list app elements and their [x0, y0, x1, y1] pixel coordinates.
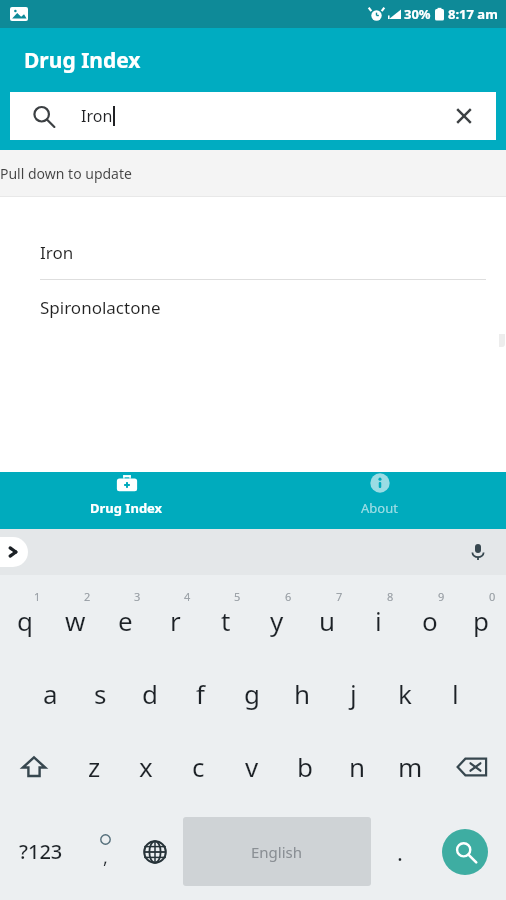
button[interactable]: k — [379, 657, 430, 730]
staticText: 30% — [404, 5, 431, 23]
staticText: Drug Index — [90, 499, 163, 517]
staticText: m — [398, 749, 423, 784]
staticText: ?123 — [19, 838, 63, 865]
button[interactable]: z — [68, 730, 120, 803]
button[interactable]: Clear search — [454, 106, 474, 126]
staticText: a — [43, 676, 58, 711]
staticText: g — [244, 676, 260, 711]
staticText: 8:17 am — [448, 5, 498, 23]
button[interactable]: s — [75, 657, 125, 730]
button[interactable]: 8 — [353, 575, 404, 657]
button[interactable]: Emoji and comma — [81, 803, 130, 900]
staticText: Iron — [81, 105, 113, 127]
staticText: 3 — [134, 589, 141, 604]
staticText: Iron — [40, 241, 74, 264]
staticText: 6 — [285, 589, 292, 604]
button[interactable]: Pull down to update — [0, 150, 506, 196]
button[interactable]: . — [375, 803, 424, 900]
other: Search — [32, 105, 54, 127]
button[interactable]: Shift — [0, 730, 68, 803]
button[interactable]: 5 — [200, 575, 251, 657]
staticText: p — [473, 603, 489, 638]
staticText: 0 — [489, 589, 496, 604]
staticText: v — [245, 749, 259, 784]
button[interactable]: ?123 — [0, 803, 81, 900]
button[interactable]: v — [225, 730, 278, 803]
staticText: e — [118, 603, 133, 638]
button[interactable]: 4 — [150, 575, 200, 657]
button[interactable]: 1 — [0, 575, 50, 657]
staticText: z — [88, 749, 101, 784]
button[interactable]: 0 — [455, 575, 506, 657]
button[interactable]: f — [175, 657, 226, 730]
staticText: s — [94, 676, 107, 711]
button[interactable]: c — [172, 730, 225, 803]
button[interactable]: n — [331, 730, 384, 803]
staticText: i — [375, 603, 382, 638]
staticText: y — [270, 603, 284, 638]
staticText: Spironolactone — [40, 296, 161, 319]
button[interactable]: About — [253, 472, 506, 517]
staticText: . — [397, 837, 403, 867]
button[interactable]: Search — [424, 803, 506, 900]
button[interactable]: 7 — [302, 575, 353, 657]
staticText: o — [422, 603, 438, 638]
staticText: f — [196, 676, 205, 711]
button[interactable]: l — [430, 657, 481, 730]
button[interactable]: English — [183, 817, 371, 886]
staticText: r — [170, 603, 181, 638]
staticText: , — [103, 845, 108, 870]
button[interactable]: Backspace — [437, 730, 506, 803]
button[interactable]: Expand toolbar — [0, 537, 28, 567]
staticText: 8 — [387, 589, 394, 604]
button[interactable]: Search — [10, 92, 496, 140]
staticText: 4 — [184, 589, 191, 604]
button[interactable]: 9 — [404, 575, 455, 657]
button[interactable]: m — [384, 730, 437, 803]
button[interactable]: Change language — [130, 803, 179, 900]
button[interactable]: d — [125, 657, 175, 730]
button[interactable]: b — [278, 730, 331, 803]
staticText: x — [139, 749, 153, 784]
button[interactable]: 3 — [100, 575, 150, 657]
button[interactable]: x — [120, 730, 172, 803]
staticText: t — [221, 603, 231, 638]
staticText: Drug Index — [24, 46, 141, 75]
button[interactable]: Drug Index — [0, 472, 253, 517]
staticText: 1 — [34, 589, 41, 604]
button[interactable]: Voice input — [468, 542, 488, 562]
button[interactable]: j — [328, 657, 379, 730]
staticText: k — [398, 676, 412, 711]
staticText: u — [319, 603, 336, 638]
staticText: Pull down to update — [0, 164, 506, 183]
staticText: w — [65, 603, 86, 638]
staticText: 5 — [234, 589, 241, 604]
button[interactable]: a — [25, 657, 75, 730]
button[interactable]: Spironolactone — [0, 280, 506, 334]
staticText: 2 — [84, 589, 91, 604]
staticText: j — [350, 676, 357, 711]
button[interactable]: 2 — [50, 575, 100, 657]
staticText: c — [192, 749, 205, 784]
staticText: 9 — [438, 589, 445, 604]
staticText: English — [251, 842, 303, 862]
button[interactable]: Iron — [0, 225, 506, 279]
button[interactable]: 6 — [251, 575, 302, 657]
staticText: b — [297, 749, 313, 784]
staticText: 7 — [336, 589, 343, 604]
staticText: h — [294, 676, 311, 711]
button[interactable]: h — [277, 657, 328, 730]
staticText: About — [361, 499, 398, 517]
staticText: d — [142, 676, 158, 711]
button[interactable]: g — [226, 657, 277, 730]
staticText: l — [452, 676, 459, 711]
staticText: q — [17, 603, 33, 638]
staticText: n — [349, 749, 366, 784]
